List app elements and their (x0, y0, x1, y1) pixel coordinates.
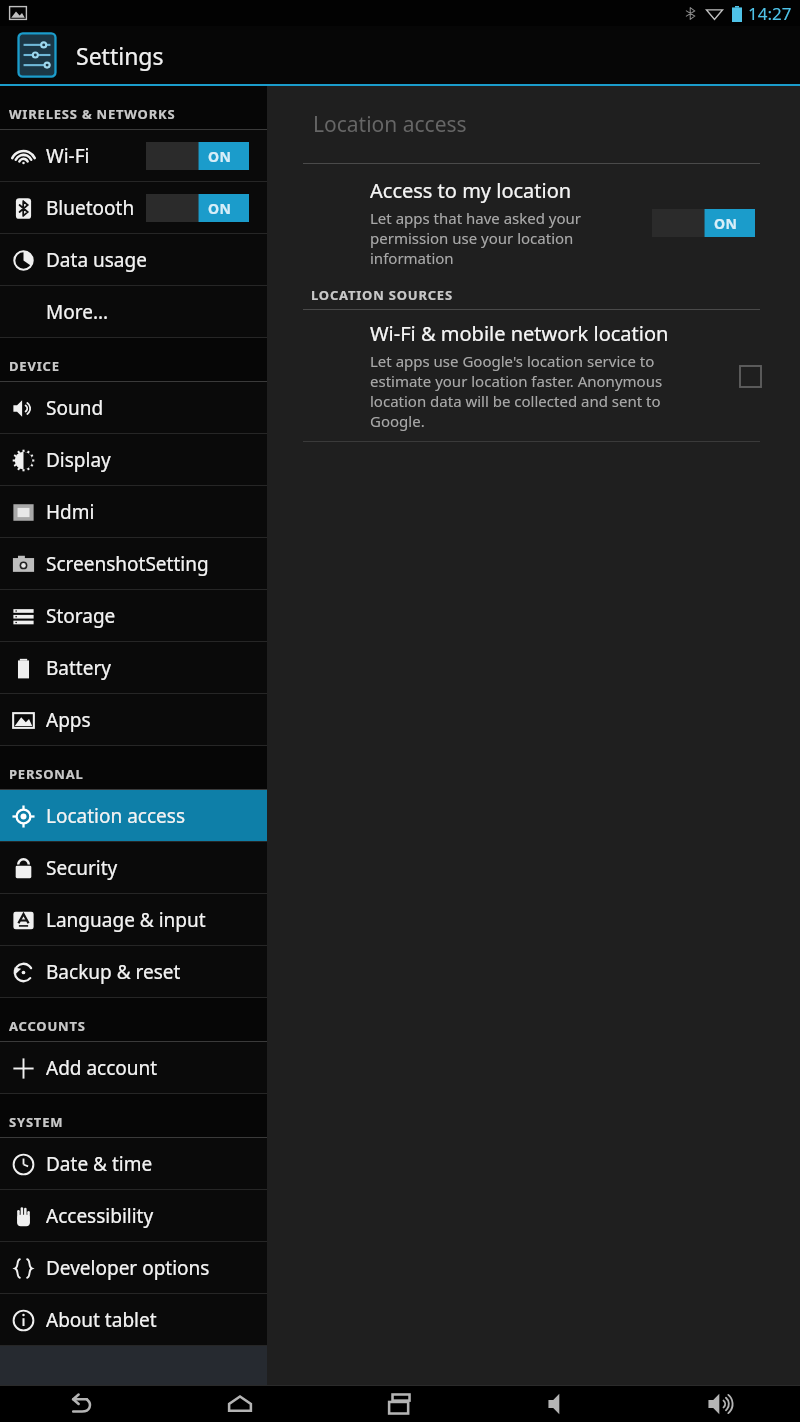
button[interactable]: Data usage (0, 234, 267, 285)
staticText: Let apps that have asked your permission… (370, 208, 582, 268)
staticText: Date & time (46, 1151, 153, 1177)
staticText: Developer options (46, 1255, 210, 1281)
button[interactable]: ScreenshotSetting (0, 538, 267, 589)
button[interactable]: Developer options (0, 1242, 267, 1293)
button[interactable]: ON (652, 209, 755, 237)
staticText: Language & input (46, 907, 206, 933)
button[interactable]: Add account (0, 1042, 267, 1093)
staticText: Accessibility (46, 1203, 154, 1229)
staticText: Settings (76, 40, 164, 71)
staticText: ON (714, 214, 738, 233)
staticText: Access to my location (370, 177, 572, 204)
staticText: PERSONAL (9, 765, 84, 783)
staticText: Sound (46, 395, 104, 421)
button[interactable]: Battery (0, 642, 267, 693)
button[interactable]: Home (160, 1386, 320, 1422)
button[interactable]: Wi-Fi (0, 130, 267, 181)
button[interactable]: Apps (0, 694, 267, 745)
staticText: Bluetooth (46, 195, 135, 221)
button[interactable]: About tablet (0, 1294, 267, 1345)
staticText: Hdmi (46, 499, 95, 525)
button[interactable]: Language & input (0, 894, 267, 945)
staticText: ScreenshotSetting (46, 551, 209, 577)
staticText: ON (208, 147, 232, 166)
staticText: Backup & reset (46, 959, 181, 985)
staticText: Display (46, 447, 111, 473)
staticText: LOCATION SOURCES (311, 286, 453, 304)
button[interactable]: Sound (0, 382, 267, 433)
staticText: ACCOUNTS (9, 1017, 86, 1035)
button[interactable]: Recent apps (320, 1386, 480, 1422)
staticText: Storage (46, 603, 116, 629)
button[interactable]: Storage (0, 590, 267, 641)
staticText: Battery (46, 655, 111, 681)
staticText: Apps (46, 707, 91, 733)
staticText: Location access (46, 803, 185, 829)
button[interactable]: Access to my location (267, 164, 800, 276)
staticText: Wi-Fi & mobile network location (370, 320, 669, 347)
button[interactable]: Date & time (0, 1138, 267, 1189)
staticText: Wi-Fi (46, 143, 90, 169)
button[interactable]: More... (0, 286, 267, 337)
button[interactable]: Wi-Fi & mobile network location (267, 310, 800, 441)
button[interactable]: ON (146, 142, 249, 170)
staticText: DEVICE (9, 357, 60, 375)
staticText: More... (46, 299, 109, 325)
staticText: Security (46, 855, 118, 881)
staticText: ON (208, 199, 232, 218)
button[interactable]: Accessibility (0, 1190, 267, 1241)
staticText: Add account (46, 1055, 158, 1081)
staticText: About tablet (46, 1307, 157, 1333)
button[interactable]: Hdmi (0, 486, 267, 537)
button[interactable]: Volume down (480, 1386, 640, 1422)
button[interactable]: Volume up (640, 1386, 800, 1422)
staticText: Let apps use Google's location service t… (370, 351, 663, 431)
button[interactable]: Security (0, 842, 267, 893)
staticText: Location access (313, 110, 467, 139)
button[interactable]: Backup & reset (0, 946, 267, 997)
button[interactable]: Location access (0, 790, 267, 841)
staticText: Data usage (46, 247, 147, 273)
button[interactable]: Back (0, 1386, 160, 1422)
staticText: 14:27 (748, 2, 792, 25)
button[interactable]: ON (146, 194, 249, 222)
staticText: SYSTEM (9, 1113, 64, 1131)
staticText: WIRELESS & NETWORKS (9, 105, 176, 123)
button[interactable]: Wi-Fi and mobile network location checkb… (728, 354, 772, 398)
button[interactable]: Bluetooth (0, 182, 267, 233)
button[interactable]: Display (0, 434, 267, 485)
